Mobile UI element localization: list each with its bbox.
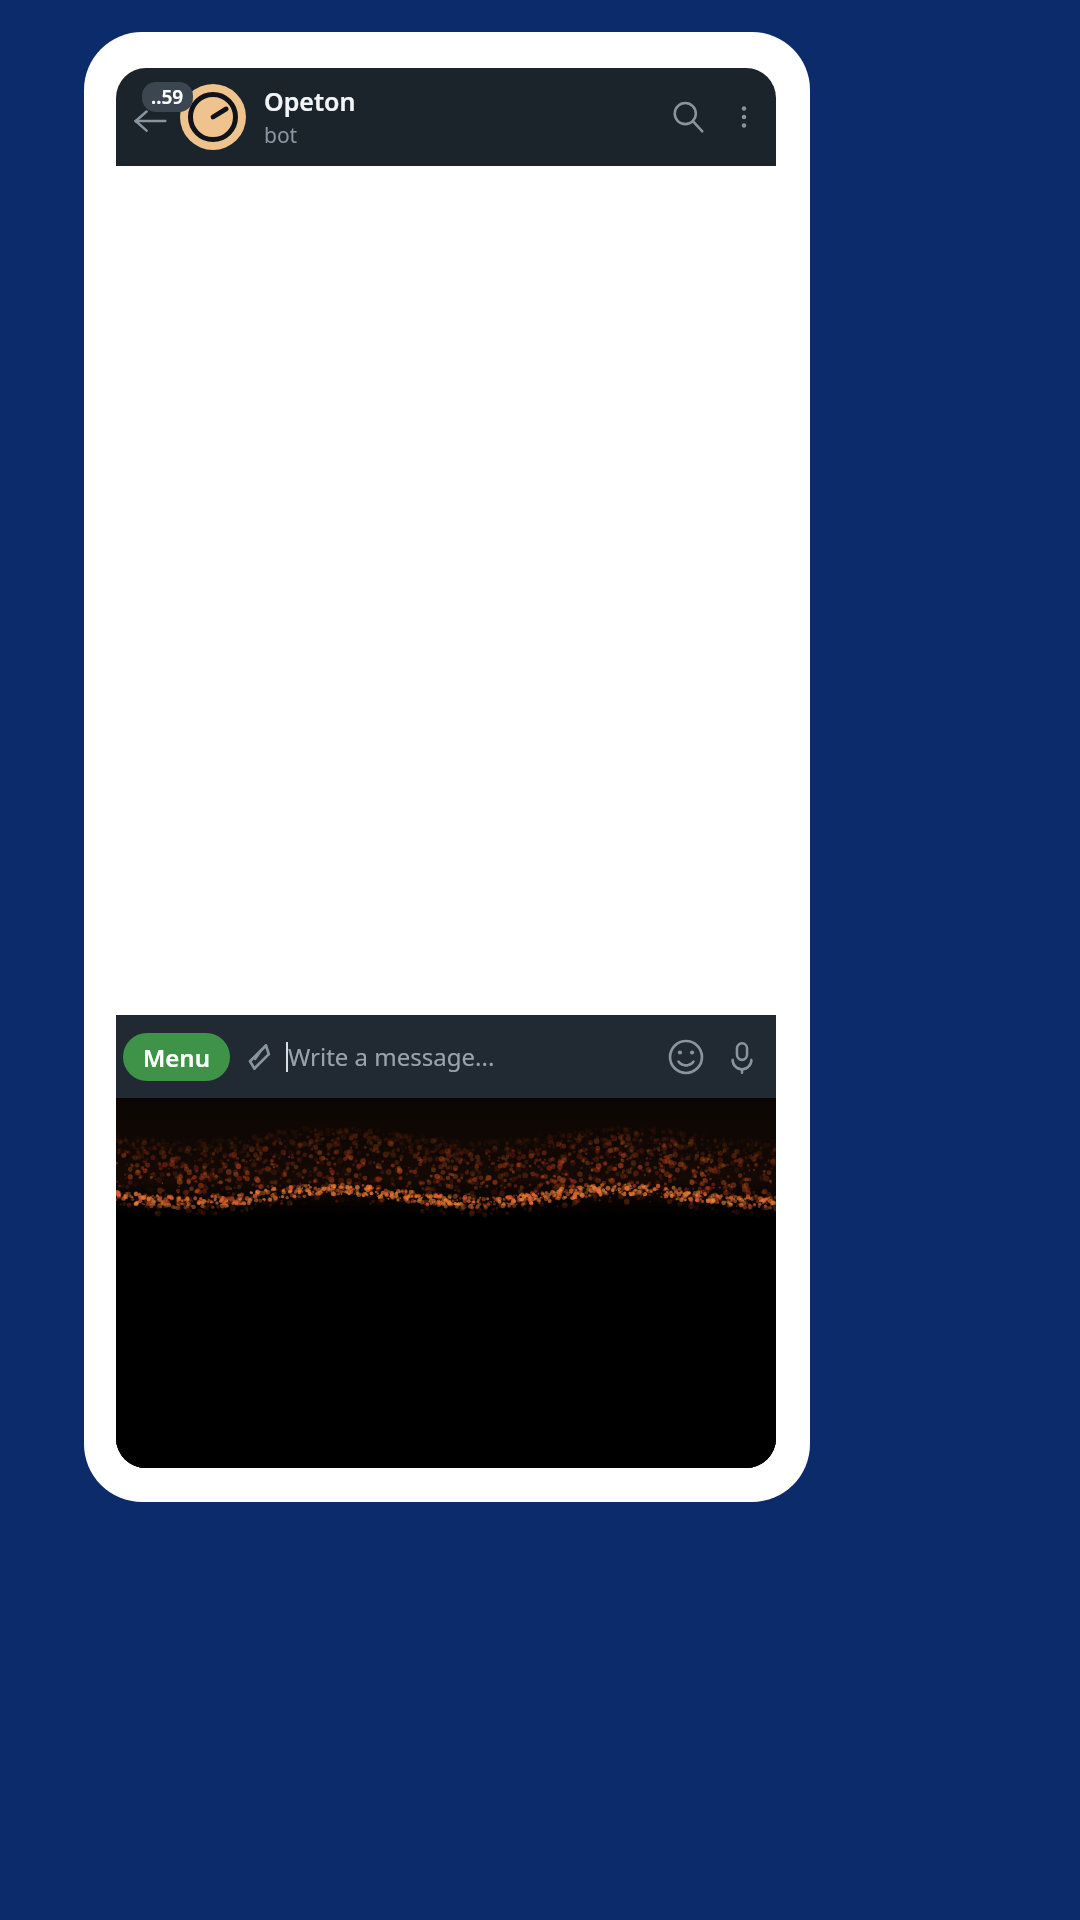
- button[interactable]: Search: [658, 87, 718, 147]
- button[interactable]: Back: [122, 89, 178, 145]
- staticText: bot: [264, 121, 298, 150]
- button[interactable]: Voice message: [714, 1029, 770, 1085]
- button[interactable]: Opeton: [264, 84, 658, 150]
- staticText: Opeton: [264, 84, 356, 118]
- staticText: Menu: [143, 1041, 210, 1074]
- button[interactable]: ..59: [142, 82, 193, 112]
- staticText: Write a message...: [288, 1040, 495, 1073]
- button[interactable]: Write a message...: [286, 1015, 658, 1098]
- button[interactable]: Menu: [123, 1033, 230, 1081]
- button[interactable]: Attach: [230, 1029, 286, 1085]
- button[interactable]: More options: [718, 91, 770, 143]
- button[interactable]: Opeton avatar: [180, 84, 246, 150]
- button[interactable]: Emoji: [658, 1029, 714, 1085]
- staticText: ..59: [151, 84, 184, 110]
